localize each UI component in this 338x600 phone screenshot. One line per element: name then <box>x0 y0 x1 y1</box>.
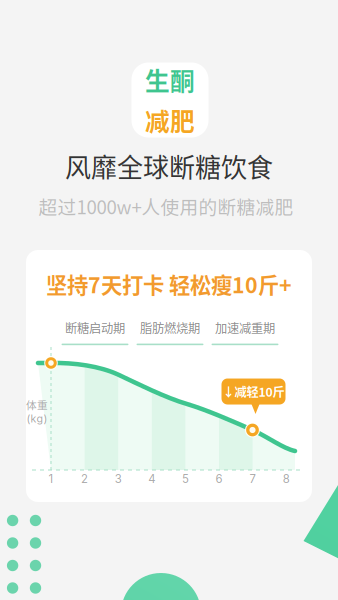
staticText: 减肥 <box>145 102 195 138</box>
staticText: (kg) <box>26 412 47 425</box>
button[interactable]: 生酮减肥 logo <box>131 62 208 137</box>
staticText: 3 <box>115 472 122 486</box>
staticText: 8 <box>283 472 290 486</box>
staticText: 断糖启动期 <box>65 319 125 337</box>
staticText: 脂肪燃烧期 <box>140 319 200 337</box>
staticText: 4 <box>148 472 155 486</box>
staticText: ↓减轻10斤 <box>222 383 284 400</box>
staticText: 2 <box>81 472 88 486</box>
staticText: 1 <box>48 472 53 486</box>
staticText: 5 <box>182 472 189 486</box>
staticText: 风靡全球断糖饮食 <box>65 147 273 185</box>
staticText: 超过1000w+人使用的断糖减肥 <box>38 192 293 219</box>
staticText: 加速减重期 <box>215 319 275 337</box>
staticText: 体重 <box>26 397 48 412</box>
button[interactable]: ↓减轻10斤 <box>221 378 285 404</box>
staticText: 生酮 <box>145 62 195 97</box>
staticText: 6 <box>215 472 222 486</box>
staticText: 坚持7天打卡 轻松瘦10斤+ <box>46 269 292 299</box>
staticText: 7 <box>250 472 256 486</box>
